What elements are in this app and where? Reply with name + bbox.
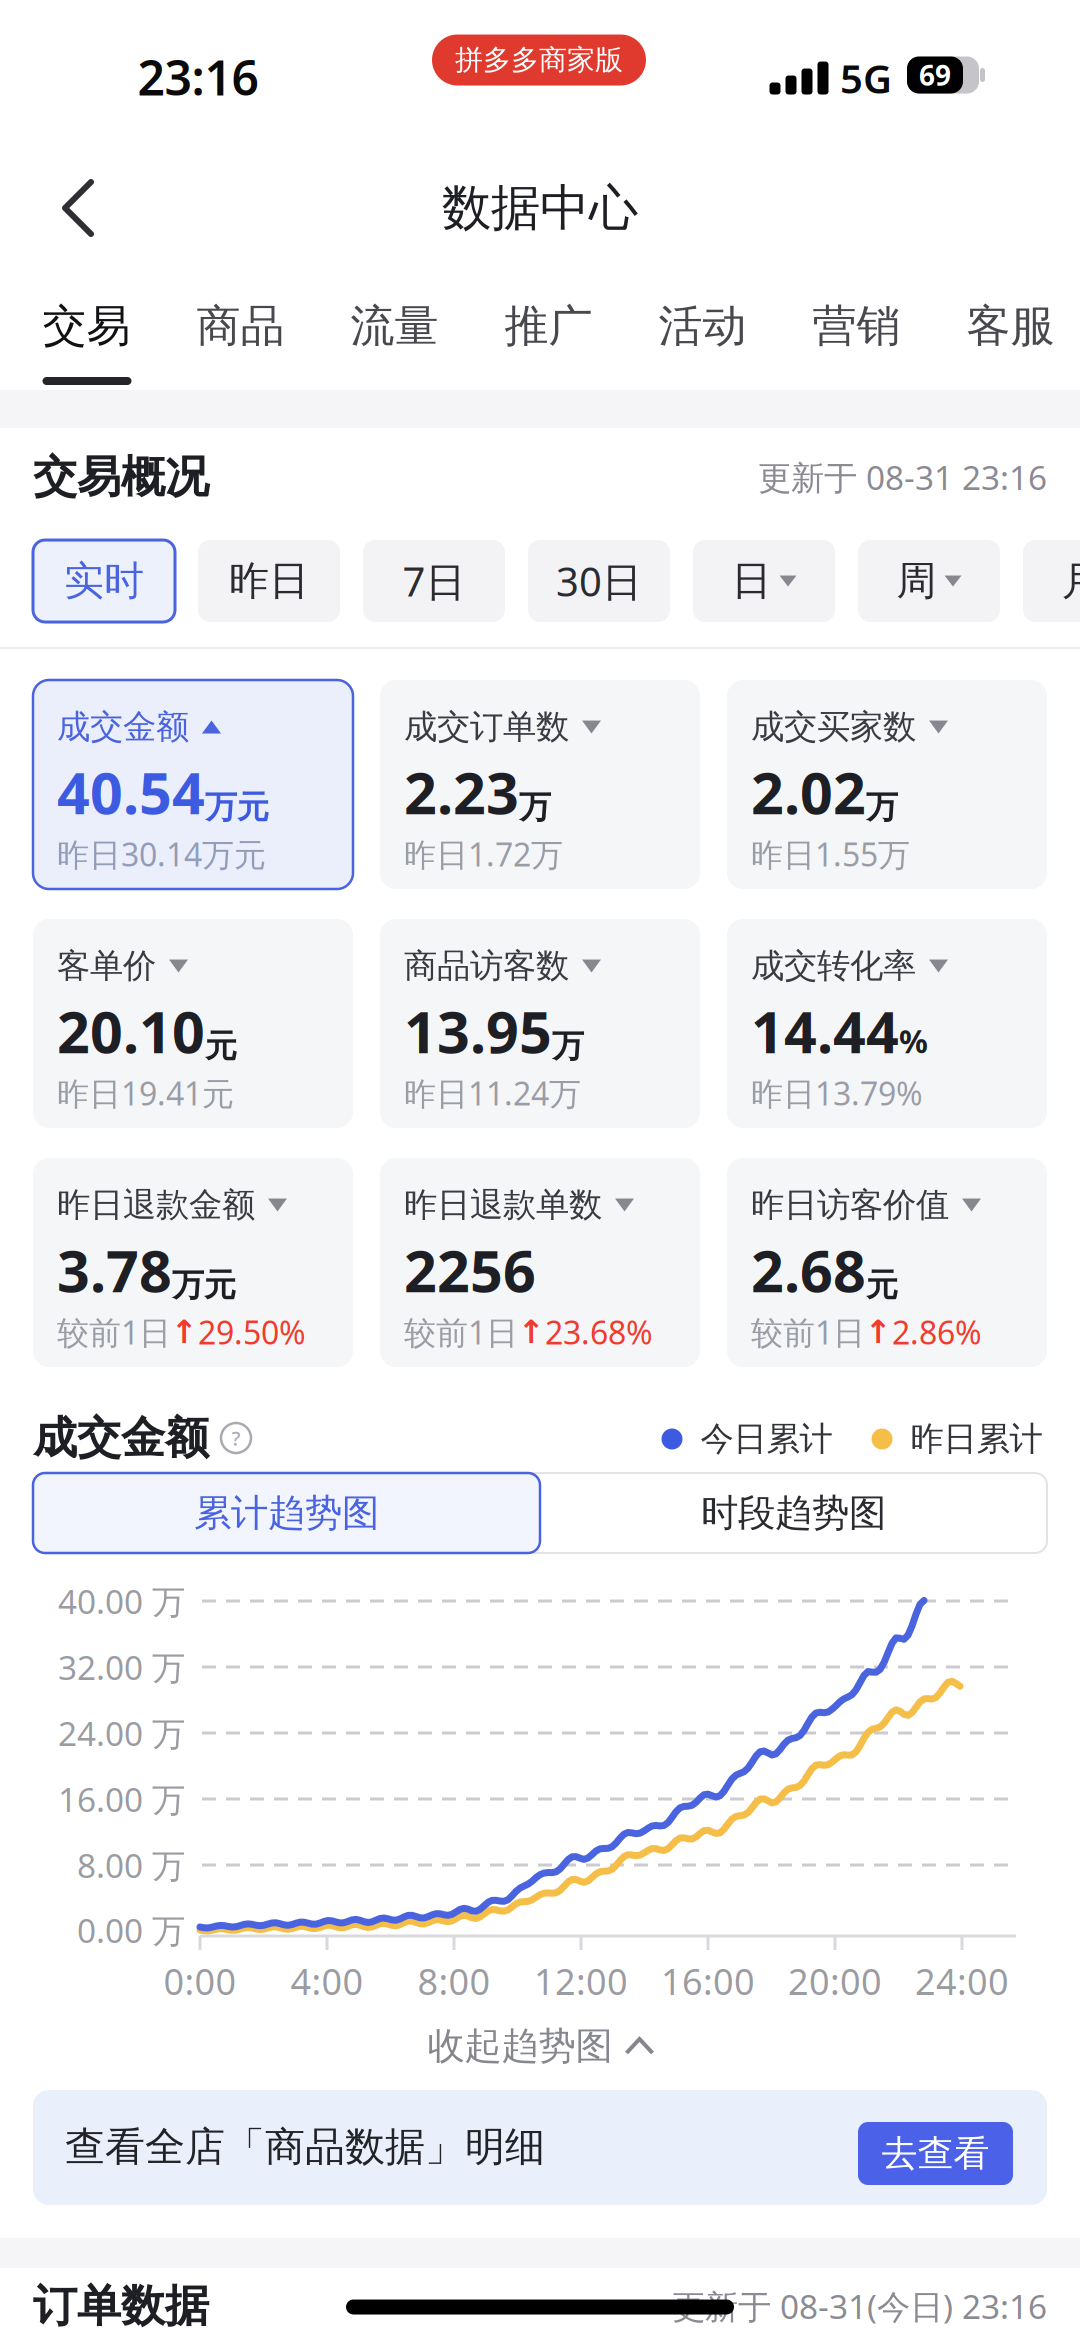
- button[interactable]: 推广: [471, 299, 625, 353]
- button[interactable]: 实时: [33, 540, 175, 622]
- staticText: 昨日1.72万: [404, 833, 563, 875]
- staticText: 成交买家数: [751, 706, 916, 747]
- staticText: 14.44%: [751, 993, 928, 1069]
- staticText: 7日: [402, 554, 465, 607]
- staticText: 查看全店「商品数据」明细: [65, 2122, 545, 2171]
- staticText: 2256: [404, 1232, 536, 1308]
- staticText: 40.00 万: [58, 1579, 185, 1623]
- button[interactable]: 交易: [9, 299, 163, 353]
- button[interactable]: 成交转化率: [727, 919, 1047, 1128]
- button[interactable]: 时段趋势图: [540, 1473, 1047, 1553]
- staticText: 推广: [504, 299, 592, 353]
- button[interactable]: 商品访客数: [380, 919, 700, 1128]
- staticText: 时段趋势图: [701, 1490, 886, 1536]
- staticText: 30日: [556, 554, 642, 607]
- button[interactable]: 昨日: [198, 540, 340, 622]
- staticText: 昨日访客价值: [751, 1184, 949, 1225]
- staticText: 2.86%: [892, 1311, 982, 1353]
- staticText: 成交转化率: [751, 945, 916, 986]
- staticText: 商品访客数: [404, 945, 569, 986]
- button[interactable]: 商品: [163, 299, 317, 353]
- button[interactable]: 周: [858, 540, 1000, 622]
- staticText: 收起趋势图: [427, 2023, 612, 2069]
- staticText: 月: [1061, 556, 1080, 605]
- button[interactable]: 日: [693, 540, 835, 622]
- staticText: 16.00 万: [58, 1777, 185, 1821]
- button[interactable]: 收起趋势图: [427, 2023, 652, 2069]
- staticText: 订单数据: [33, 2279, 209, 2333]
- staticText: 较前1日: [57, 1311, 171, 1353]
- staticText: 24:00: [915, 1957, 1009, 2005]
- staticText: 29.50%: [198, 1311, 306, 1353]
- staticText: 去查看: [881, 2131, 989, 2176]
- staticText: 客服: [966, 299, 1054, 353]
- button[interactable]: 昨日退款单数: [380, 1158, 700, 1367]
- staticText: 0:00: [163, 1957, 236, 2005]
- staticText: 客单价: [57, 945, 156, 986]
- staticText: 32.00 万: [58, 1645, 185, 1689]
- button[interactable]: 成交买家数: [727, 680, 1047, 889]
- button[interactable]: 成交订单数: [380, 680, 700, 889]
- staticText: 流量: [350, 299, 438, 353]
- button[interactable]: 流量: [317, 299, 471, 353]
- staticText: 交易概况: [33, 450, 209, 504]
- staticText: 昨日11.24万: [404, 1072, 581, 1114]
- staticText: 2.68元: [751, 1232, 898, 1308]
- button[interactable]: 活动: [625, 299, 779, 353]
- staticText: 更新于 08-31 23:16: [758, 455, 1047, 499]
- button[interactable]: 客单价: [33, 919, 353, 1128]
- button[interactable]: 月: [1023, 540, 1080, 622]
- staticText: ↑: [518, 1314, 545, 1350]
- staticText: 实时: [64, 556, 144, 605]
- staticText: 昨日1.55万: [751, 833, 910, 875]
- staticText: 5G: [840, 51, 892, 104]
- staticText: 活动: [658, 299, 746, 353]
- staticText: 昨日: [229, 556, 309, 605]
- button[interactable]: 成交金额: [33, 680, 353, 889]
- staticText: 2.23万: [404, 754, 551, 830]
- staticText: 数据中心: [442, 178, 638, 238]
- staticText: 20:00: [788, 1957, 882, 2005]
- button[interactable]: 昨日访客价值: [727, 1158, 1047, 1367]
- staticText: 昨日退款单数: [404, 1184, 602, 1225]
- staticText: 16:00: [661, 1957, 755, 2005]
- staticText: 昨日退款金额: [57, 1184, 255, 1225]
- staticText: 4:00: [290, 1957, 363, 2005]
- staticText: 累计趋势图: [194, 1490, 379, 1536]
- staticText: 8:00: [417, 1957, 490, 2005]
- staticText: 成交金额: [33, 1411, 209, 1465]
- staticText: 13.95万: [404, 993, 584, 1069]
- staticText: 成交金额: [57, 706, 189, 747]
- staticText: 23.68%: [545, 1311, 653, 1353]
- staticText: 昨日19.41元: [57, 1072, 234, 1114]
- staticText: 24.00 万: [58, 1711, 185, 1755]
- staticText: 昨日13.79%: [751, 1072, 923, 1114]
- staticText: ?: [231, 1425, 240, 1451]
- staticText: 3.78万元: [57, 1232, 236, 1308]
- staticText: 69: [919, 56, 951, 94]
- button[interactable]: 7日: [363, 540, 505, 622]
- button[interactable]: 客服: [933, 299, 1080, 353]
- button[interactable]: 30日: [528, 540, 670, 622]
- staticText: 2.02万: [751, 754, 898, 830]
- staticText: 成交订单数: [404, 706, 569, 747]
- button[interactable]: Back: [61, 178, 95, 238]
- staticText: 12:00: [534, 1957, 628, 2005]
- staticText: ↑: [865, 1314, 892, 1350]
- staticText: 更新于 08-31(今日) 23:16: [672, 2284, 1047, 2328]
- staticText: 20.10元: [57, 993, 237, 1069]
- staticText: 日: [731, 556, 771, 605]
- staticText: 营销: [812, 299, 900, 353]
- button[interactable]: 昨日退款金额: [33, 1158, 353, 1367]
- staticText: ↑: [171, 1314, 198, 1350]
- staticText: 今日累计: [700, 1418, 832, 1459]
- button[interactable]: 帮助: [221, 1423, 251, 1453]
- staticText: 较前1日: [404, 1311, 518, 1353]
- staticText: 商品: [196, 299, 284, 353]
- button[interactable]: 营销: [779, 299, 933, 353]
- staticText: 40.54万元: [57, 754, 269, 830]
- staticText: 昨日30.14万元: [57, 833, 266, 875]
- staticText: 交易: [42, 299, 130, 353]
- button[interactable]: 累计趋势图: [33, 1473, 540, 1553]
- button[interactable]: 去查看: [858, 2122, 1013, 2185]
